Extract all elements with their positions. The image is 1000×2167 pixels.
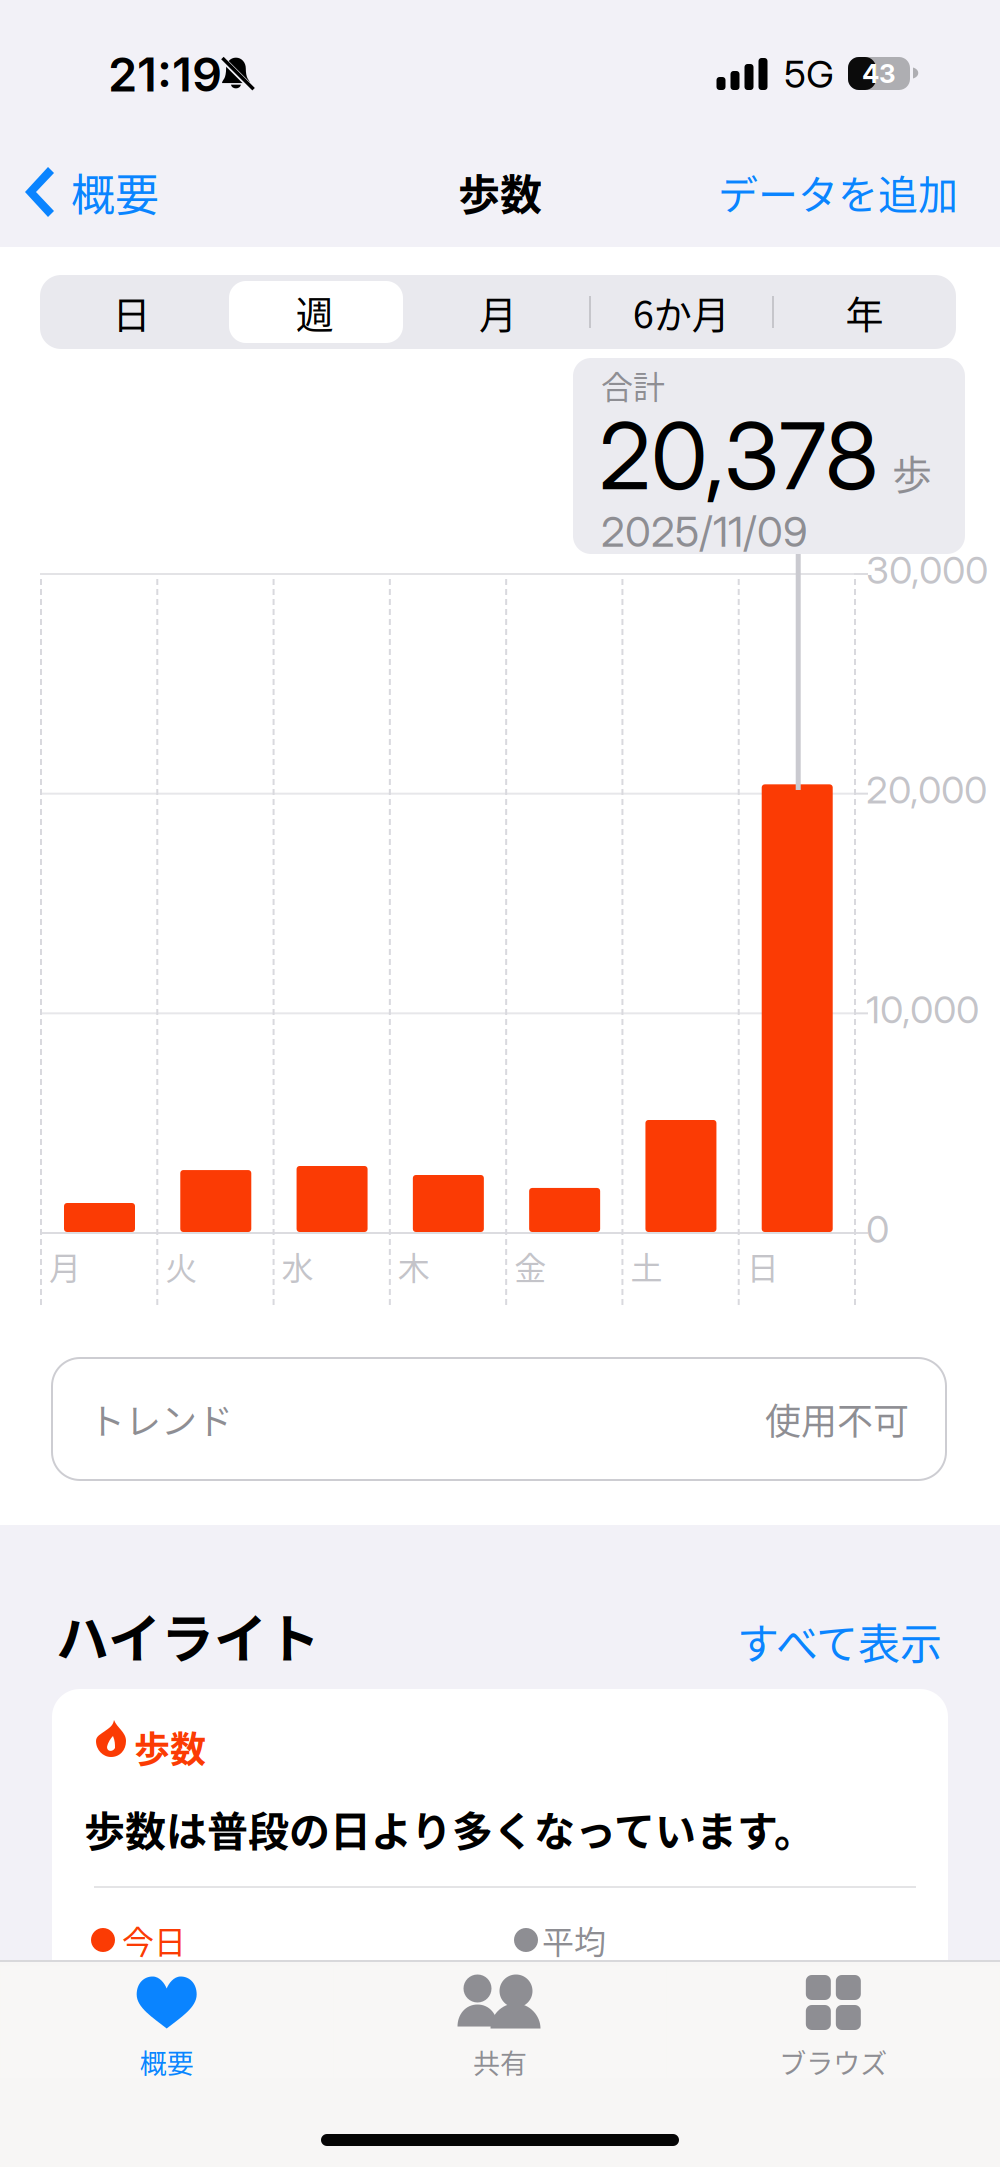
button[interactable]: データを追加 <box>698 144 978 240</box>
staticText: 0 <box>866 1206 889 1252</box>
staticText: ハイライト <box>56 1597 320 1674</box>
staticText: 10,000 <box>866 986 979 1032</box>
staticText: 5G <box>784 51 834 97</box>
staticText: 月 <box>49 1243 81 1289</box>
staticText: 週 <box>296 284 334 339</box>
staticText: 日 <box>113 284 151 339</box>
button[interactable]: 年 <box>773 275 956 349</box>
staticText: 歩数 <box>134 1721 206 1773</box>
staticText: ブラウズ <box>779 2042 887 2082</box>
staticText: 歩 <box>892 443 932 501</box>
button[interactable]: 共有 <box>333 1966 667 2078</box>
staticText: 20,378 <box>599 400 879 511</box>
staticText: 30,000 <box>866 547 988 593</box>
button[interactable]: 週 <box>223 275 406 349</box>
staticText: 今日 <box>122 1917 186 1963</box>
staticText: トレンド <box>89 1393 233 1445</box>
button[interactable]: 月 <box>406 275 590 349</box>
staticText: 概要 <box>140 2042 194 2082</box>
staticText: データを追加 <box>718 163 958 221</box>
button[interactable]: 日 <box>40 275 223 349</box>
button[interactable]: 概要 <box>0 1966 333 2078</box>
button[interactable]: 概要 <box>0 144 183 240</box>
staticText: 43 <box>862 58 896 89</box>
button[interactable]: トレンド <box>52 1358 946 1480</box>
staticText: 木 <box>398 1243 430 1289</box>
staticText: 金 <box>514 1243 546 1289</box>
staticText: 歩数は普段の日より多くなっています。 <box>84 1799 815 1858</box>
staticText: 20,000 <box>866 767 987 813</box>
staticText: 使用不可 <box>765 1393 909 1445</box>
button[interactable]: ブラウズ <box>667 1966 1000 2078</box>
staticText: 土 <box>630 1243 662 1289</box>
staticText: 平均 <box>542 1917 606 1963</box>
staticText: 火 <box>165 1243 197 1289</box>
staticText: 水 <box>282 1243 314 1289</box>
staticText: 2025/11/09 <box>601 506 808 557</box>
staticText: 歩数 <box>458 162 542 222</box>
button[interactable]: 6か月 <box>590 275 773 349</box>
staticText: 共有 <box>473 2042 527 2082</box>
staticText: すべて表示 <box>737 1611 942 1671</box>
staticText: 日 <box>747 1243 779 1289</box>
staticText: 合計 <box>601 362 665 408</box>
staticText: 6か月 <box>633 284 730 339</box>
staticText: 月 <box>479 284 517 339</box>
button[interactable]: すべて表示 <box>729 1611 950 1671</box>
staticText: 概要 <box>71 160 159 224</box>
staticText: 年 <box>845 284 883 339</box>
staticText: 21:19 <box>108 46 222 103</box>
